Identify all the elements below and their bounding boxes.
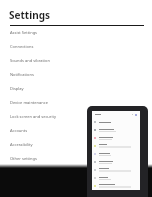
button[interactable]: Display bbox=[10, 86, 80, 100]
staticText: Other settings bbox=[10, 156, 37, 161]
button[interactable]: Lock screen and security bbox=[10, 114, 80, 128]
staticText: Notifications bbox=[10, 72, 34, 77]
button[interactable] bbox=[92, 182, 140, 190]
button[interactable]: Accounts bbox=[10, 128, 80, 142]
staticText: Display bbox=[10, 86, 24, 91]
staticText: Connections bbox=[10, 44, 34, 49]
button[interactable] bbox=[92, 126, 140, 134]
button[interactable]: Device maintenance bbox=[10, 100, 80, 114]
button[interactable]: Sounds and vibration bbox=[10, 58, 80, 72]
button[interactable]: Assist Settings bbox=[10, 30, 80, 44]
button[interactable] bbox=[92, 166, 140, 174]
button[interactable] bbox=[92, 134, 140, 142]
staticText: Device maintenance bbox=[10, 100, 48, 105]
staticText: Accounts bbox=[10, 128, 28, 133]
button[interactable]: Connections bbox=[10, 44, 80, 58]
button[interactable]: Notifications bbox=[10, 72, 80, 86]
button[interactable]: Settings bbox=[9, 8, 50, 22]
button[interactable] bbox=[92, 158, 140, 166]
staticText: Sounds and vibration bbox=[10, 58, 50, 63]
button[interactable] bbox=[92, 142, 140, 150]
button[interactable] bbox=[92, 150, 140, 158]
button[interactable]: Accessibility bbox=[10, 142, 80, 156]
staticText: Settings bbox=[9, 8, 50, 22]
button[interactable] bbox=[92, 118, 140, 126]
staticText: Accessibility bbox=[10, 142, 33, 147]
button[interactable] bbox=[92, 174, 140, 182]
staticText: Lock screen and security bbox=[10, 114, 56, 119]
staticText: Assist Settings bbox=[10, 30, 38, 35]
button[interactable]: Other settings bbox=[10, 156, 80, 170]
